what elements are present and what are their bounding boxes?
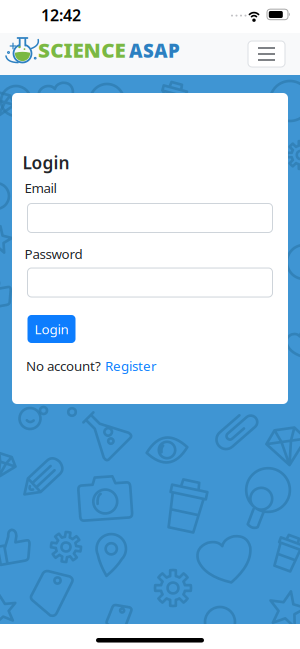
- staticText: Register: [105, 357, 157, 375]
- button[interactable]: Register: [105, 357, 157, 375]
- staticText: ASAP: [129, 38, 180, 63]
- staticText: SCIENCE: [38, 38, 117, 63]
- button[interactable]: Login: [27, 315, 75, 343]
- staticText: Login: [34, 320, 68, 338]
- staticText: Password: [24, 245, 82, 263]
- staticText: 12:42: [41, 4, 81, 26]
- button[interactable]: Menu: [248, 41, 285, 67]
- staticText: Login: [22, 151, 69, 174]
- staticText: No account?: [26, 357, 101, 375]
- staticText: Email: [24, 179, 56, 197]
